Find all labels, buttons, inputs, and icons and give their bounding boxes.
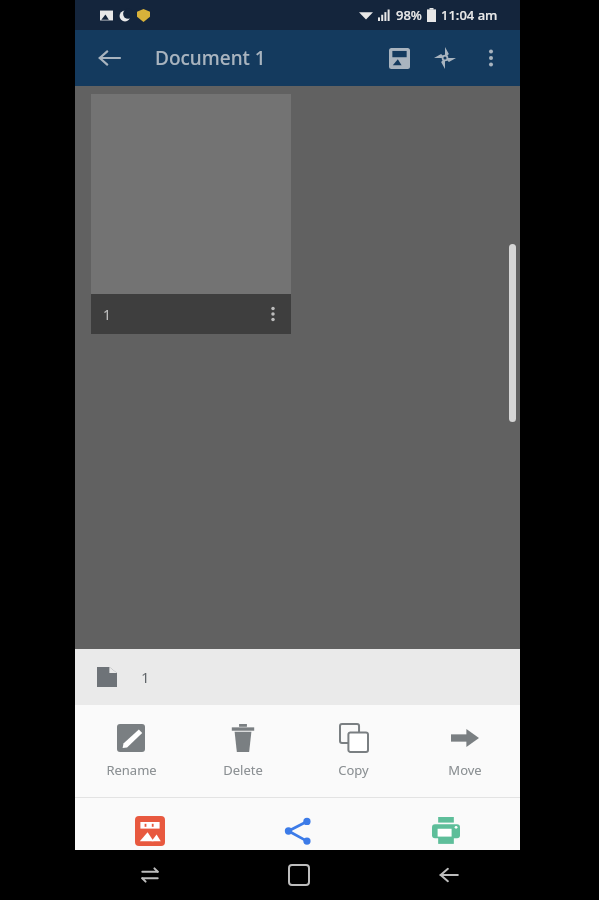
- staticText: 11:04 am: [441, 6, 498, 24]
- button[interactable]: Rename: [75, 705, 187, 797]
- staticText: Document 1: [155, 45, 266, 71]
- button[interactable]: Delete: [187, 705, 298, 797]
- staticText: Rename: [106, 761, 157, 779]
- button[interactable]: Back: [374, 850, 524, 900]
- staticText: Move: [448, 761, 482, 779]
- button[interactable]: Rotate: [422, 35, 468, 81]
- staticText: Print: [431, 854, 461, 872]
- staticText: Copy: [338, 761, 369, 779]
- staticText: 98%: [396, 6, 422, 24]
- staticText: 1: [141, 667, 150, 687]
- staticText: Share: [281, 854, 316, 872]
- button[interactable]: Back: [85, 34, 133, 82]
- button[interactable]: Save: [75, 798, 224, 890]
- button[interactable]: More options: [468, 35, 514, 81]
- button[interactable]: Recents: [75, 850, 224, 900]
- button[interactable]: 1: [91, 94, 291, 334]
- button[interactable]: 1: [75, 649, 520, 705]
- button[interactable]: Print: [372, 798, 520, 890]
- button[interactable]: Move: [409, 705, 520, 797]
- button[interactable]: Page options: [255, 296, 291, 332]
- button[interactable]: Share: [224, 798, 372, 890]
- button[interactable]: Export as PDF: [376, 35, 422, 81]
- staticText: Delete: [223, 761, 263, 779]
- button[interactable]: Copy: [298, 705, 409, 797]
- staticText: Save: [135, 855, 164, 873]
- button[interactable]: Home: [224, 850, 374, 900]
- staticText: 1: [103, 305, 112, 324]
